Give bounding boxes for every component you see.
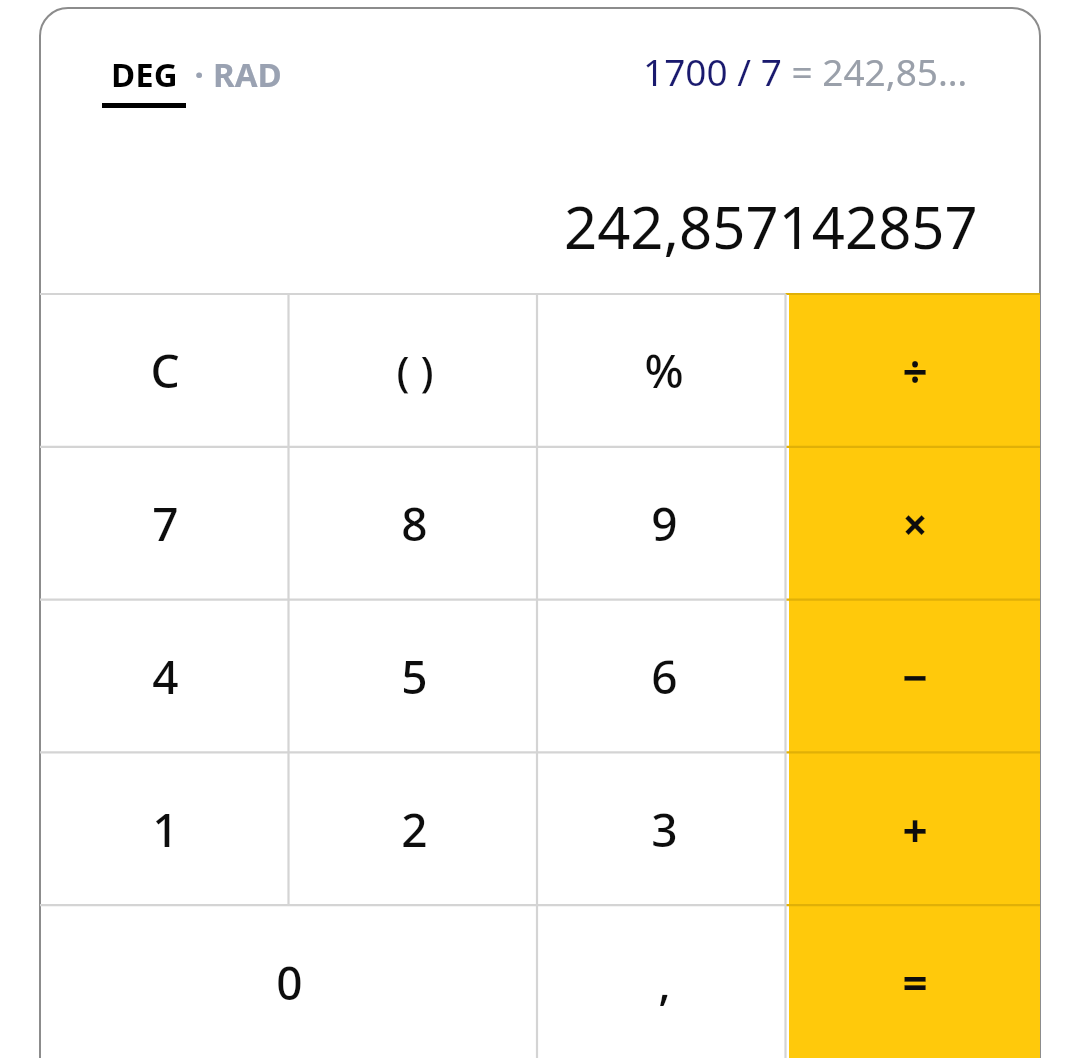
staticText: 3 — [651, 798, 678, 861]
button[interactable]: , — [539, 906, 789, 1058]
staticText: − — [902, 647, 928, 707]
staticText: 6 — [651, 645, 678, 708]
staticText: % — [644, 339, 684, 402]
button[interactable]: 0 — [40, 906, 539, 1058]
staticText: · — [186, 52, 213, 97]
button[interactable]: Subtract — [789, 600, 1040, 753]
button[interactable]: Equals — [789, 906, 1040, 1058]
staticText: = — [902, 952, 928, 1012]
button[interactable]: 1 — [40, 753, 290, 906]
staticText: 7 — [152, 492, 179, 555]
staticText: C — [150, 339, 180, 402]
button[interactable]: 4 — [40, 600, 290, 753]
button[interactable]: 8 — [290, 447, 539, 600]
button[interactable]: DEG — [102, 52, 186, 108]
button[interactable]: C — [40, 294, 290, 447]
button[interactable]: Add — [789, 753, 1040, 906]
button[interactable]: 1700 / 7 = 242,85… — [643, 46, 968, 96]
staticText: , — [658, 951, 671, 1014]
staticText: + — [902, 800, 928, 860]
button[interactable]: 3 — [539, 753, 789, 906]
button[interactable]: RAD — [213, 58, 282, 103]
staticText: 4 — [152, 645, 179, 708]
staticText: 242,857142857 — [564, 187, 978, 266]
staticText: × — [902, 494, 928, 554]
button[interactable]: 6 — [539, 600, 789, 753]
staticText: 1700 / 7 = 242,85… — [643, 46, 968, 96]
button[interactable]: Divide — [789, 294, 1040, 447]
staticText: 2 — [401, 798, 428, 861]
button[interactable]: 7 — [40, 447, 290, 600]
button[interactable]: ( ) — [290, 294, 539, 447]
button[interactable]: 9 — [539, 447, 789, 600]
staticText: 9 — [651, 492, 678, 555]
staticText: 1 — [152, 798, 179, 861]
staticText: ÷ — [902, 341, 928, 401]
button[interactable]: 5 — [290, 600, 539, 753]
button[interactable]: % — [539, 294, 789, 447]
button[interactable]: 2 — [290, 753, 539, 906]
staticText: DEG — [111, 52, 178, 97]
staticText: 0 — [276, 951, 303, 1014]
staticText: RAD — [213, 52, 282, 97]
staticText: ( ) — [396, 342, 434, 399]
staticText: 5 — [401, 645, 428, 708]
button[interactable]: Multiply — [789, 447, 1040, 600]
staticText: 8 — [401, 492, 428, 555]
